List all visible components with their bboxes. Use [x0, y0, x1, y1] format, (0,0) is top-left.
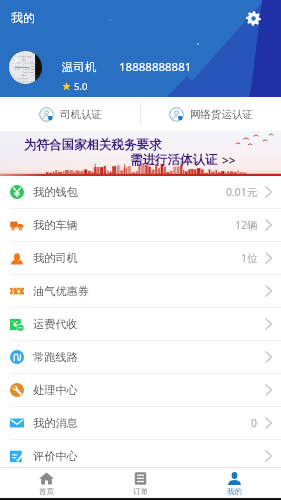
staticText: 我的消息: [33, 416, 78, 430]
staticText: 订单: [133, 487, 148, 496]
button[interactable]: 处理中心: [0, 374, 281, 406]
button[interactable]: 运费代收: [0, 308, 281, 340]
staticText: 5.0: [74, 80, 88, 93]
button[interactable]: Avatar: [9, 51, 42, 84]
staticText: 18888888881: [119, 59, 192, 75]
button[interactable]: 网络货运认证: [141, 97, 281, 131]
button[interactable]: 订单: [93, 468, 187, 498]
button[interactable]: 我的车辆: [0, 209, 281, 241]
staticText: 我的司机: [33, 251, 78, 265]
staticText: 我的: [11, 10, 35, 25]
staticText: 需进行活体认证: [130, 152, 218, 168]
button[interactable]: Settings: [246, 11, 261, 26]
staticText: 油气优惠券: [33, 284, 89, 298]
button[interactable]: 油气优惠券: [0, 275, 281, 307]
button[interactable]: 首页: [0, 468, 93, 498]
button[interactable]: 活体认证 banner: [0, 132, 281, 176]
staticText: 运费代收: [33, 317, 78, 331]
button[interactable]: 我的: [187, 468, 281, 498]
staticText: 首页: [39, 487, 54, 496]
staticText: 1位: [241, 251, 258, 265]
staticText: 12辆: [235, 218, 258, 232]
staticText: 网络货运认证: [190, 108, 253, 121]
staticText: 温司机: [62, 60, 97, 74]
staticText: 0.01元: [226, 185, 258, 199]
staticText: 我的车辆: [33, 218, 78, 232]
staticText: 0: [251, 416, 258, 430]
staticText: 评价中心: [33, 449, 78, 463]
staticText: 我的钱包: [33, 185, 78, 199]
button[interactable]: 我的消息: [0, 407, 281, 439]
staticText: 我的: [227, 487, 242, 496]
staticText: 司机认证: [60, 108, 102, 121]
staticText: 常跑线路: [33, 350, 78, 364]
staticText: 为符合国家相关税务要求: [24, 137, 162, 153]
button[interactable]: 我的司机: [0, 242, 281, 274]
staticText: >>: [222, 152, 236, 168]
staticText: 处理中心: [33, 383, 78, 397]
button[interactable]: 常跑线路: [0, 341, 281, 373]
button[interactable]: 司机认证: [0, 97, 140, 131]
button[interactable]: 我的钱包: [0, 176, 281, 208]
button[interactable]: 评价中心: [0, 440, 281, 472]
